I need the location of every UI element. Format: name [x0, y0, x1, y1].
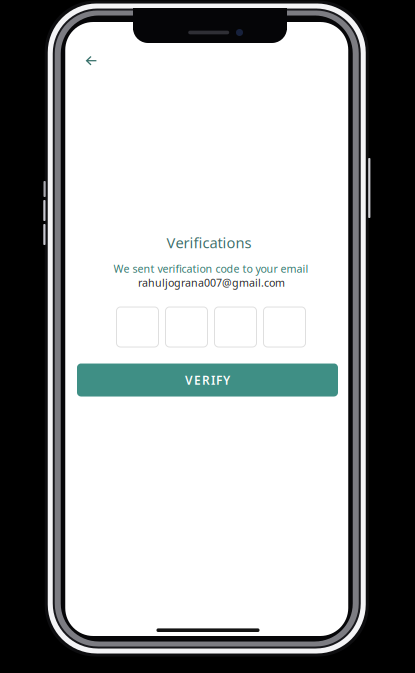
staticText: V E R I F Y: [185, 372, 230, 388]
button[interactable]: V E R I F Y: [77, 363, 338, 396]
button[interactable]: Fourth digit: [263, 307, 305, 347]
button[interactable]: Third digit: [214, 307, 256, 347]
staticText: Verifications: [166, 233, 251, 252]
button[interactable]: Back: [72, 41, 110, 79]
staticText: rahuljograna007@gmail.com: [138, 275, 285, 290]
button[interactable]: Second digit: [165, 307, 207, 347]
staticText: We sent verification code to your email: [113, 261, 308, 276]
button[interactable]: First digit: [116, 307, 158, 347]
